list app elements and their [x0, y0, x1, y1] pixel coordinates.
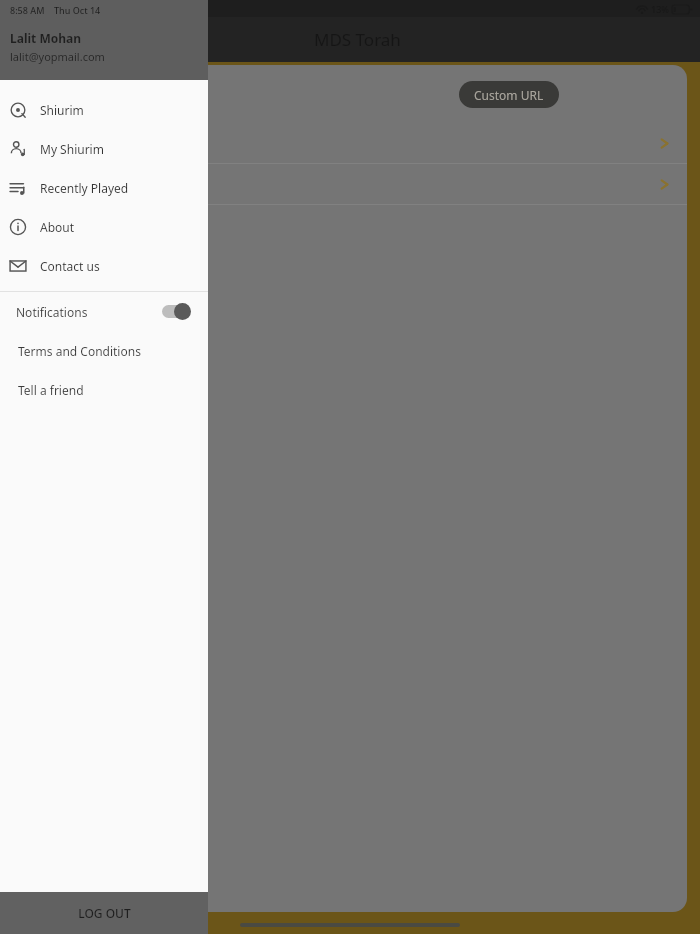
button[interactable]: Shiurim: [0, 90, 208, 129]
button[interactable]: Custom URL: [459, 81, 559, 108]
staticText: LOG OUT: [78, 905, 131, 921]
button[interactable]: My Shiurim: [0, 129, 208, 168]
other: Open: [658, 178, 671, 191]
staticText: About: [40, 219, 75, 235]
other: Open: [658, 137, 671, 150]
button[interactable]: Recently Played: [0, 168, 208, 207]
button[interactable]: Open: [6, 123, 687, 163]
button[interactable]: dded: [8, 82, 64, 106]
staticText: Tell a friend: [18, 382, 84, 398]
button[interactable]: About: [0, 207, 208, 246]
staticText: 8:58 AM: [10, 4, 45, 16]
button[interactable]: Tell a friend: [0, 370, 208, 409]
staticText: Lalit Mohan: [10, 30, 81, 46]
button[interactable]: Contact us: [0, 246, 208, 285]
staticText: lalit@yopmail.com: [10, 49, 105, 64]
staticText: MDS Torah: [314, 28, 401, 51]
staticText: Contact us: [40, 258, 100, 274]
button[interactable]: Notifications: [0, 292, 208, 331]
staticText: Thu Oct 14: [54, 4, 101, 16]
staticText: Recently Played: [40, 180, 129, 196]
staticText: Custom URL: [474, 87, 544, 103]
button[interactable]: Open: [6, 164, 687, 204]
staticText: Notifications: [16, 304, 88, 320]
staticText: My Shiurim: [40, 141, 104, 157]
staticText: Terms and Conditions: [18, 343, 141, 359]
staticText: Shiurim: [40, 102, 84, 118]
button[interactable]: LOG OUT: [0, 892, 208, 934]
button[interactable]: Terms and Conditions: [0, 331, 208, 370]
